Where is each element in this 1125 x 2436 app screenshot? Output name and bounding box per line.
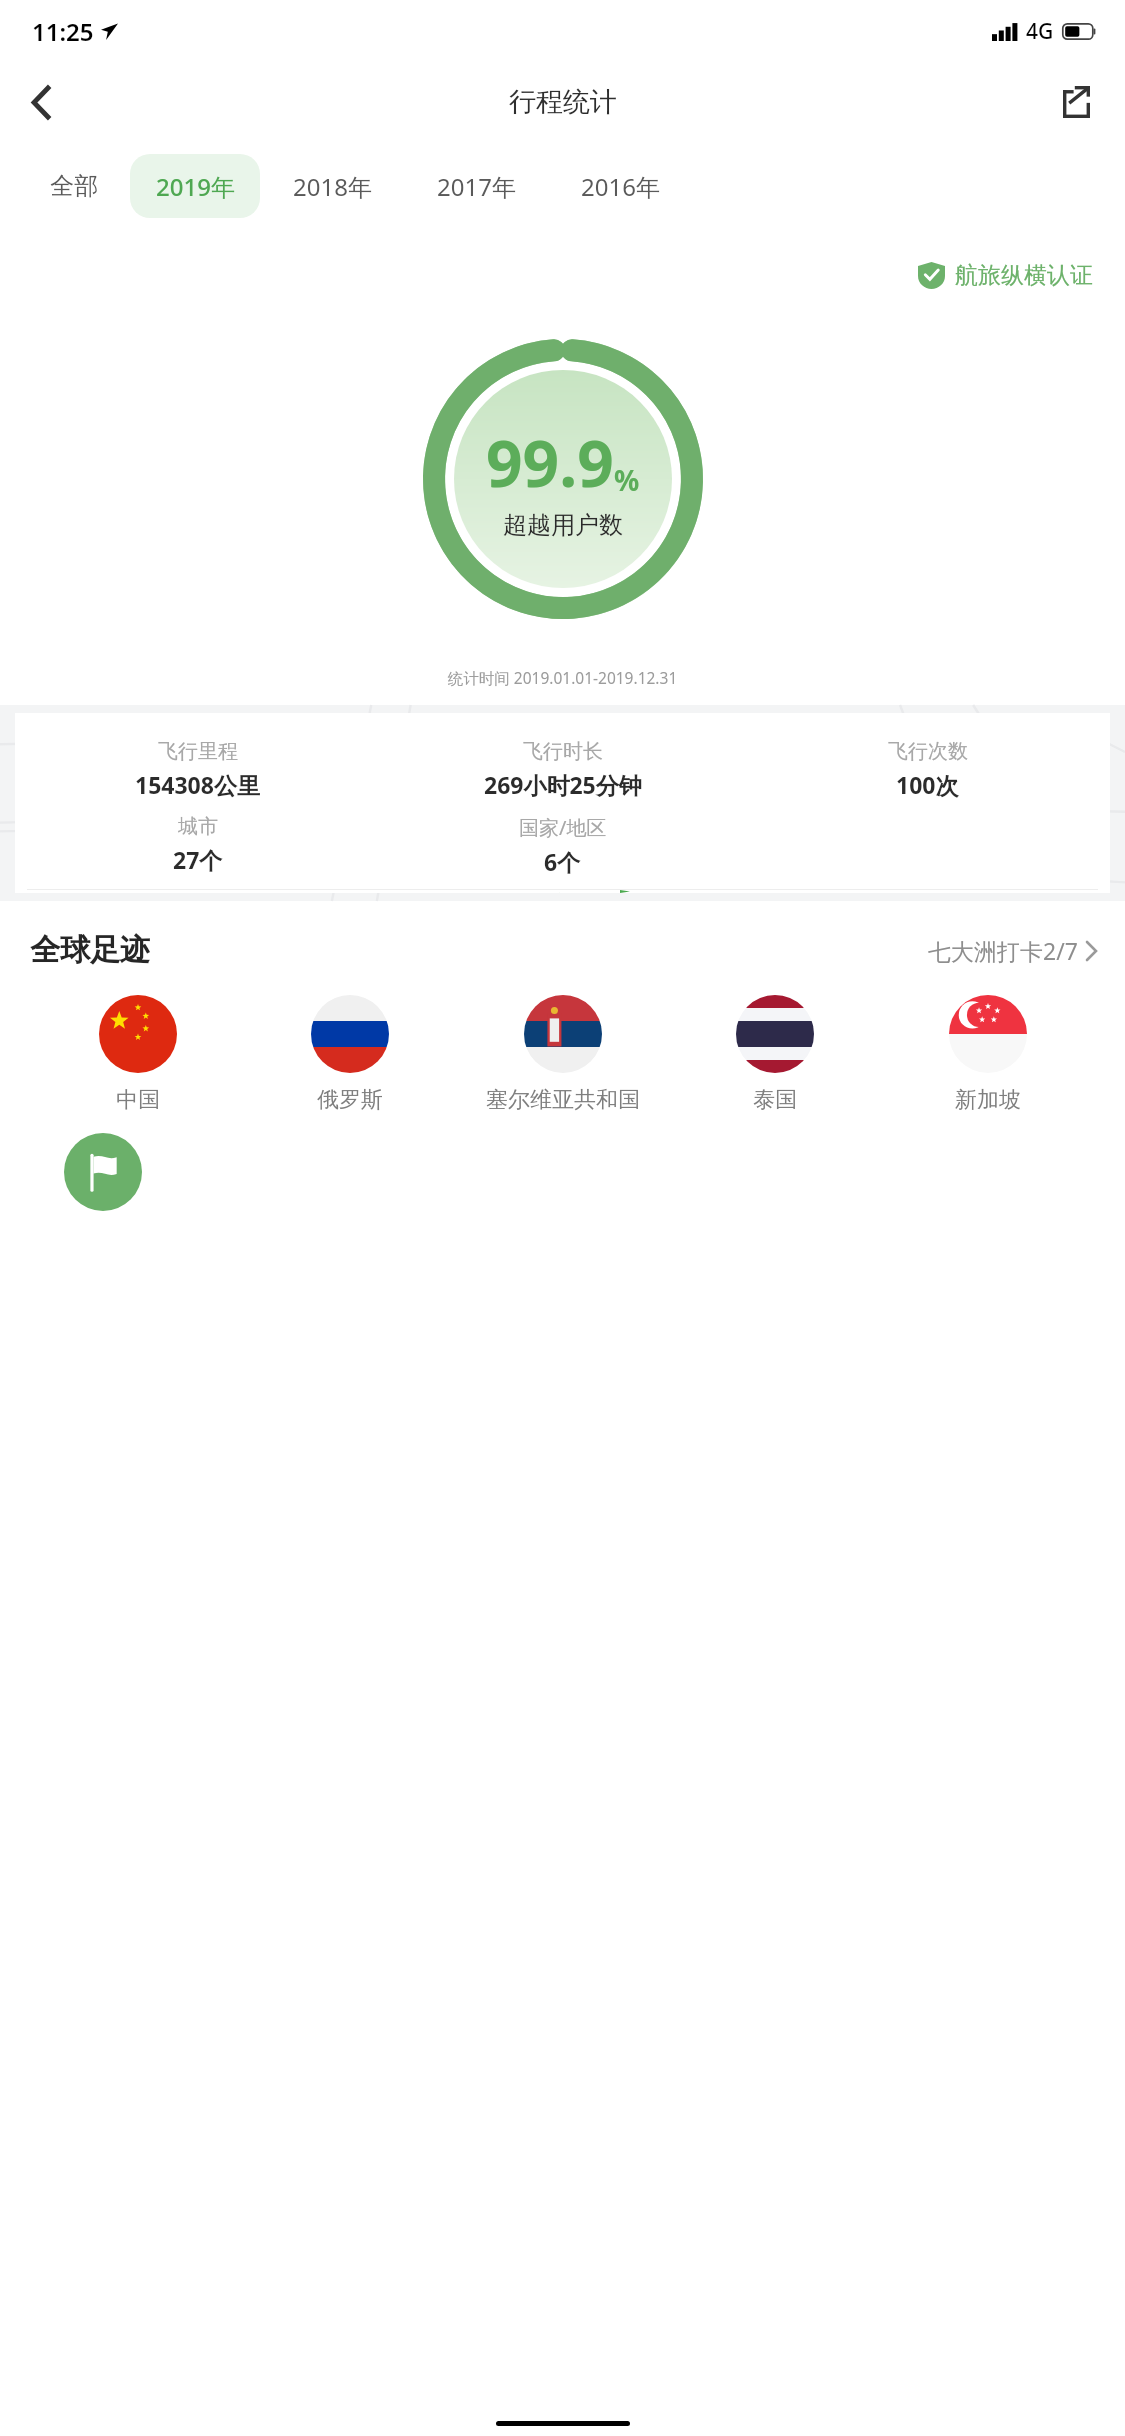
staticText: 4G xyxy=(1026,17,1054,46)
button[interactable]: 俄罗斯 xyxy=(261,995,439,1114)
staticText: 全部 xyxy=(50,171,98,201)
button[interactable]: Back xyxy=(6,67,76,137)
staticText: 国家/地区 xyxy=(519,814,607,841)
staticText: 154308公里 xyxy=(135,769,260,800)
staticText: % xyxy=(614,461,640,499)
staticText: 2018年 xyxy=(293,170,372,203)
button[interactable]: 七大洲打卡2/7 xyxy=(924,931,1101,970)
staticText: 100次 xyxy=(896,769,959,800)
staticText: 俄罗斯 xyxy=(317,1086,383,1114)
staticText: 99.9 xyxy=(486,419,614,506)
staticText: 飞行次数 xyxy=(888,739,968,764)
staticText: 中国 xyxy=(116,1086,160,1114)
staticText: 塞尔维亚共和国 xyxy=(486,1086,640,1114)
button[interactable]: Add destination xyxy=(64,1133,142,1211)
staticText: 航旅纵横认证 xyxy=(955,261,1093,290)
staticText: 269小时25分钟 xyxy=(484,769,642,800)
button[interactable]: 2016年 xyxy=(548,154,692,218)
button[interactable]: Share xyxy=(1041,67,1111,137)
staticText: 11:25 xyxy=(32,15,94,48)
staticText: 行程统计 xyxy=(509,85,617,119)
button[interactable]: 2018年 xyxy=(260,154,404,218)
staticText: 统计时间 2019.01.01-2019.12.31 xyxy=(0,667,1125,688)
staticText: 2016年 xyxy=(581,170,660,203)
staticText: 飞行里程 xyxy=(158,739,238,764)
staticText: 27个 xyxy=(173,844,223,875)
staticText: 全球足迹 xyxy=(30,931,150,969)
button[interactable]: 泰国 xyxy=(686,995,864,1114)
button[interactable]: 塞尔维亚共和国 xyxy=(474,995,652,1114)
staticText: 2017年 xyxy=(437,170,516,203)
staticText: 超越用户数 xyxy=(503,510,623,540)
button[interactable]: 查看航线图 xyxy=(15,890,1110,893)
staticText: 城市 xyxy=(178,814,218,839)
staticText: 6个 xyxy=(544,846,581,877)
button[interactable]: 2017年 xyxy=(404,154,548,218)
button[interactable]: 新加坡 xyxy=(899,995,1077,1114)
button[interactable]: 航旅纵横认证 xyxy=(912,255,1099,296)
button[interactable]: 中国 xyxy=(49,995,227,1114)
staticText: 七大洲打卡2/7 xyxy=(928,935,1078,966)
staticText: 新加坡 xyxy=(955,1086,1021,1114)
staticText: 泰国 xyxy=(753,1086,797,1114)
staticText: 2019年 xyxy=(156,170,235,203)
button[interactable]: 2019年 xyxy=(130,154,260,218)
staticText: 飞行时长 xyxy=(523,739,603,764)
button[interactable]: 全部 xyxy=(18,154,130,218)
